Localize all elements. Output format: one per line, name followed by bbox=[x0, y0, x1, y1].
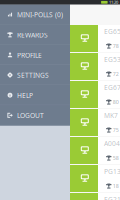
staticText: MINI-POLLS (0) bbox=[17, 10, 63, 19]
button[interactable]: LOGOUT bbox=[0, 105, 70, 125]
button[interactable]: EG67 bbox=[70, 81, 120, 108]
staticText: A004 bbox=[104, 139, 120, 148]
button[interactable]: PROFILE bbox=[0, 45, 70, 65]
staticText: LOGOUT bbox=[17, 111, 44, 120]
button[interactable]: EG21 bbox=[70, 193, 120, 200]
staticText: PG13 bbox=[104, 167, 120, 176]
staticText: EG65 bbox=[104, 27, 120, 36]
button[interactable]: PG13 bbox=[70, 165, 120, 192]
staticText: MK7 bbox=[104, 111, 118, 120]
staticText: 18 bbox=[113, 182, 119, 190]
button[interactable]: REWARDS bbox=[0, 25, 70, 45]
button[interactable]: MINI-POLLS (0) bbox=[0, 4, 70, 25]
staticText: 80 bbox=[113, 98, 119, 106]
staticText: EG53 bbox=[104, 55, 120, 64]
button[interactable]: EG65 bbox=[70, 25, 120, 52]
staticText: 58 bbox=[113, 154, 119, 162]
staticText: 75 bbox=[113, 126, 119, 134]
button[interactable]: Menu bbox=[7, 13, 16, 19]
staticText: EG67 bbox=[104, 83, 120, 92]
staticText: REWARDS bbox=[17, 30, 48, 39]
button[interactable]: SETTINGS bbox=[0, 65, 70, 85]
staticText: 78 bbox=[113, 42, 119, 50]
staticText: HELP bbox=[17, 91, 33, 100]
button[interactable]: EG53 bbox=[70, 53, 120, 80]
button[interactable]: A004 bbox=[70, 137, 120, 164]
button[interactable]: MK7 bbox=[70, 109, 120, 136]
staticText: 72 bbox=[113, 70, 119, 78]
staticText: PROFILE bbox=[17, 51, 42, 59]
staticText: 11:20 bbox=[109, 0, 118, 5]
button[interactable]: HELP bbox=[0, 85, 70, 105]
staticText: EG21 bbox=[104, 195, 120, 200]
staticText: SETTINGS bbox=[17, 71, 49, 80]
